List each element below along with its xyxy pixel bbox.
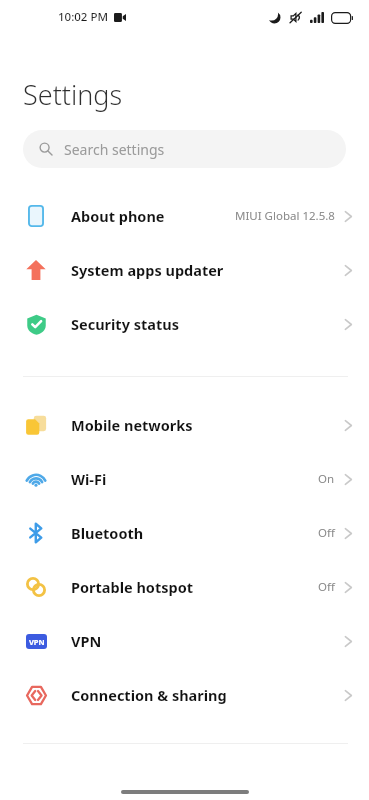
staticText: Wi-Fi <box>71 469 107 489</box>
staticText: Connection & sharing <box>71 685 227 705</box>
staticText: On <box>318 471 335 487</box>
other: Bluetooth <box>25 522 47 544</box>
other: Mobile networks <box>25 414 47 436</box>
staticText: Off <box>318 525 335 541</box>
button[interactable]: Connection and sharing <box>0 668 369 722</box>
button[interactable]: Security status <box>0 297 369 351</box>
staticText: Off <box>318 579 335 595</box>
staticText: 10:02 PM <box>58 9 109 25</box>
button[interactable]: Bluetooth <box>0 506 369 560</box>
staticText: System apps updater <box>71 260 224 280</box>
other: Wi-Fi <box>25 468 47 490</box>
staticText: Settings <box>23 76 123 113</box>
staticText: VPN <box>29 637 45 647</box>
other: System apps updater <box>25 259 47 281</box>
button[interactable]: Mobile networks <box>0 398 369 452</box>
other: Portable hotspot <box>26 577 46 597</box>
staticText: Security status <box>71 314 179 334</box>
button[interactable]: VPN <box>0 614 369 668</box>
button[interactable]: Portable hotspot <box>0 560 369 614</box>
staticText: Bluetooth <box>71 523 144 543</box>
button[interactable]: About phone <box>0 189 369 243</box>
staticText: Search settings <box>64 140 165 159</box>
staticText: VPN <box>71 631 102 651</box>
staticText: Portable hotspot <box>71 577 194 597</box>
button[interactable]: Wi-Fi <box>0 452 369 506</box>
button[interactable]: System apps updater <box>0 243 369 297</box>
other: Connection and sharing <box>26 685 47 706</box>
button[interactable]: Search settings <box>23 130 346 168</box>
staticText: MIUI Global 12.5.8 <box>235 208 335 224</box>
other: VPN <box>26 634 47 649</box>
staticText: Mobile networks <box>71 415 193 435</box>
staticText: About phone <box>71 206 165 226</box>
other: About phone <box>25 205 47 227</box>
other: Security status <box>26 314 47 335</box>
